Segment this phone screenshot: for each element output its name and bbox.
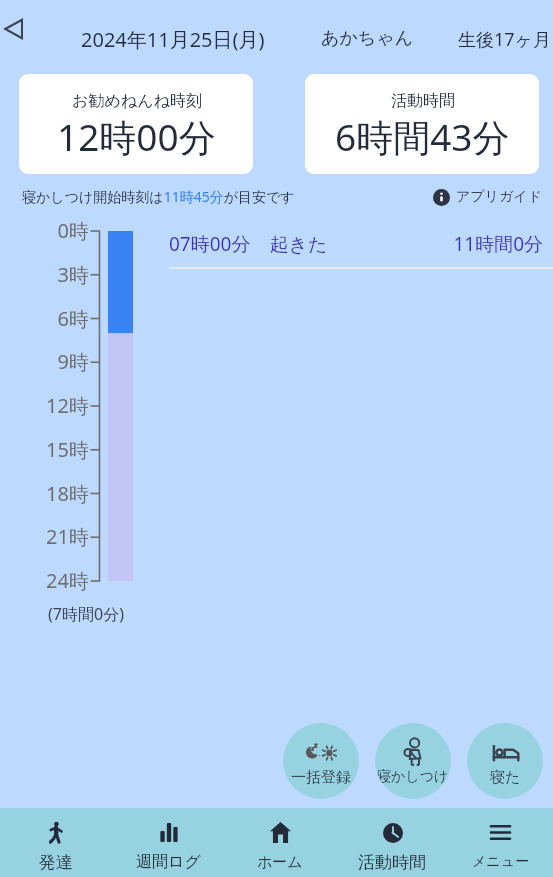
staticText: あかちゃん: [321, 27, 414, 50]
button[interactable]: Back: [0, 15, 28, 43]
staticText: 12時00分: [57, 111, 216, 162]
staticText: 発達: [39, 852, 73, 872]
staticText: 寝かしつけ: [377, 768, 449, 786]
button[interactable]: アプリガイド: [433, 188, 542, 206]
staticText: ホーム: [257, 853, 303, 872]
button[interactable]: Weekly log: [112, 808, 224, 877]
staticText: 寝た: [490, 768, 521, 787]
staticText: 一括登録: [291, 768, 351, 787]
staticText: 6時間43分: [335, 111, 510, 162]
other: Weekly log: [160, 823, 178, 842]
staticText: 生後17ヶ月: [458, 27, 552, 52]
staticText: 活動時間: [391, 91, 455, 111]
staticText: お勧めねんね時刻: [72, 91, 202, 111]
button[interactable]: Activity time: [336, 808, 448, 877]
staticText: 21時: [0, 523, 89, 550]
staticText: 15時: [0, 436, 89, 463]
other: Slept: [491, 741, 520, 763]
staticText: 3時: [0, 261, 89, 288]
other: Activity time: [383, 823, 403, 843]
button[interactable]: Put to sleep: [375, 723, 451, 799]
staticText: 寝かしつけ開始時刻は11時45分が目安です: [22, 187, 295, 206]
staticText: 活動時間: [358, 852, 426, 872]
button[interactable]: Home: [224, 808, 336, 877]
button[interactable]: Bulk register: [283, 723, 359, 799]
staticText: 9時: [0, 348, 89, 375]
staticText: アプリガイド: [456, 188, 542, 206]
button[interactable]: 活動時間: [305, 74, 539, 174]
other: Menu: [491, 825, 510, 840]
button[interactable]: お勧めねんね時刻: [19, 74, 253, 174]
button[interactable]: Slept: [467, 723, 543, 799]
staticText: 24時: [0, 567, 89, 594]
staticText: 6時: [0, 305, 89, 332]
staticText: 0時: [0, 217, 89, 244]
other: Put to sleep: [402, 738, 425, 767]
other: Home: [270, 822, 291, 843]
staticText: 2024年11月25日(月): [81, 26, 265, 53]
staticText: 07時00分 起きた: [169, 231, 328, 257]
staticText: 週間ログ: [136, 852, 201, 872]
button[interactable]: Menu: [448, 808, 552, 877]
other: Bulk register: [306, 744, 337, 761]
staticText: メニュー: [472, 853, 529, 871]
staticText: 12時: [0, 392, 89, 419]
other: Development: [49, 822, 63, 843]
staticText: 18時: [0, 480, 89, 507]
staticText: 11時間0分: [413, 231, 543, 257]
staticText: (7時間0分): [25, 603, 147, 625]
button[interactable]: Development: [0, 808, 112, 877]
